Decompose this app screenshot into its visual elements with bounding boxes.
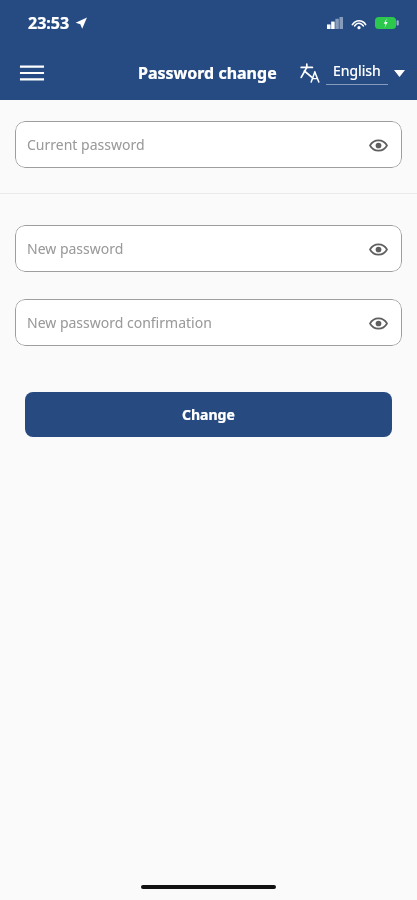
staticText: Change xyxy=(182,405,235,424)
button[interactable]: Current password xyxy=(15,121,402,168)
staticText: New password xyxy=(27,239,124,258)
staticText: English xyxy=(333,61,381,80)
staticText: Current password xyxy=(27,135,145,154)
button[interactable]: New password xyxy=(15,225,402,272)
staticText: New password confirmation xyxy=(27,313,212,332)
button[interactable]: Toggle password visibility xyxy=(360,231,396,267)
button[interactable]: New password confirmation xyxy=(15,299,402,346)
button[interactable]: Change xyxy=(25,392,392,437)
button[interactable]: Toggle password visibility xyxy=(360,127,396,163)
button[interactable]: Open navigation menu xyxy=(8,49,56,97)
staticText: Password change xyxy=(138,62,277,84)
staticText: 23:53 xyxy=(28,12,70,34)
button[interactable]: Toggle password visibility xyxy=(360,305,396,341)
button[interactable]: English xyxy=(296,57,409,89)
